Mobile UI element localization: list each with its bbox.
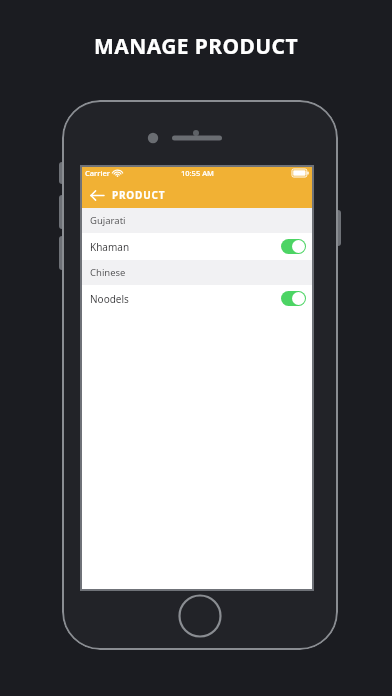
button[interactable]: Back <box>88 186 106 204</box>
button[interactable]: Toggle product <box>281 239 306 254</box>
staticText: MANAGE PRODUCT <box>94 32 298 61</box>
staticText: Carrier <box>85 168 110 178</box>
staticText: Chinese <box>90 266 126 279</box>
staticText: PRODUCT <box>112 188 166 202</box>
staticText: 10:55 AM <box>181 168 214 178</box>
button[interactable]: Toggle product <box>281 291 306 306</box>
staticText: Noodels <box>90 292 129 306</box>
staticText: Gujarati <box>90 214 126 227</box>
button[interactable]: Noodels <box>80 285 314 312</box>
button[interactable]: Khaman <box>80 233 314 260</box>
staticText: Khaman <box>90 240 130 254</box>
